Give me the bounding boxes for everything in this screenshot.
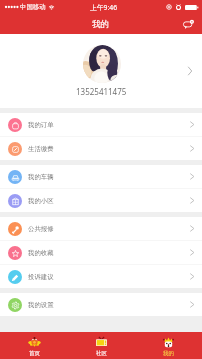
staticText: 上午9:46	[90, 3, 118, 12]
button[interactable]: 13525411475	[0, 34, 202, 108]
staticText: 我的小区	[28, 197, 54, 205]
staticText: 我的	[92, 19, 110, 30]
staticText: 我的	[163, 350, 174, 357]
staticText: 我的设置	[28, 301, 54, 309]
button[interactable]: 我的订单	[0, 113, 202, 136]
staticText: 我的订单	[28, 121, 54, 129]
button[interactable]: Messages	[183, 19, 194, 30]
button[interactable]: 投诉建议	[0, 265, 202, 288]
staticText: 我的收藏	[28, 249, 54, 257]
button[interactable]: 生活缴费	[0, 137, 202, 160]
staticText: 公共报修	[28, 225, 54, 233]
button[interactable]: 首页	[0, 332, 68, 359]
staticText: 社区	[96, 350, 107, 357]
staticText: 投诉建议	[28, 273, 54, 281]
button[interactable]: 社区	[68, 332, 135, 359]
button[interactable]: 我的车辆	[0, 165, 202, 188]
staticText: 首页	[29, 350, 40, 357]
staticText: 13525411475	[76, 86, 127, 97]
staticText: 中国移动	[20, 3, 46, 11]
button[interactable]: 我的设置	[0, 293, 202, 316]
staticText: 生活缴费	[28, 145, 54, 153]
button[interactable]: 公共报修	[0, 217, 202, 240]
button[interactable]: 我的收藏	[0, 241, 202, 264]
button[interactable]: 我的	[135, 332, 202, 359]
button[interactable]: 我的小区	[0, 189, 202, 212]
staticText: 我的车辆	[28, 173, 54, 181]
